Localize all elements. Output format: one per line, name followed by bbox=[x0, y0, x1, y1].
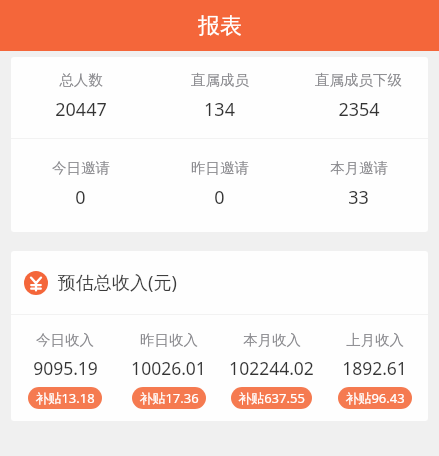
button[interactable]: 昨日收入 bbox=[117, 331, 220, 409]
other: Estimated income bbox=[24, 271, 48, 295]
staticText: 昨日收入 bbox=[140, 331, 198, 349]
button[interactable]: 今日收入 bbox=[13, 331, 117, 409]
staticText: 上月收入 bbox=[346, 331, 404, 349]
button[interactable]: 本月收入 bbox=[220, 331, 323, 409]
button[interactable]: Estimated income bbox=[11, 251, 428, 314]
staticText: 134 bbox=[204, 97, 235, 122]
staticText: 本月邀请 bbox=[330, 159, 388, 177]
staticText: 2354 bbox=[338, 97, 380, 122]
staticText: 直属成员下级 bbox=[315, 71, 402, 89]
staticText: 昨日邀请 bbox=[191, 159, 249, 177]
button[interactable]: 直属成员 bbox=[150, 71, 289, 122]
staticText: 本月收入 bbox=[243, 331, 301, 349]
staticText: 0 bbox=[75, 185, 86, 210]
staticText: 33 bbox=[348, 185, 369, 210]
staticText: 20447 bbox=[55, 97, 107, 122]
button[interactable]: 今日邀请 bbox=[11, 159, 150, 210]
staticText: 直属成员 bbox=[191, 71, 249, 89]
staticText: 今日收入 bbox=[36, 331, 94, 349]
staticText: 总人数 bbox=[59, 71, 103, 89]
button[interactable]: 总人数 bbox=[11, 71, 150, 122]
staticText: 预估总收入(元) bbox=[58, 270, 177, 295]
staticText: 今日邀请 bbox=[52, 159, 110, 177]
staticText: 补贴17.36 bbox=[139, 389, 199, 407]
staticText: 补贴637.55 bbox=[238, 389, 305, 407]
staticText: 1892.61 bbox=[342, 356, 407, 380]
staticText: 9095.19 bbox=[33, 356, 98, 380]
staticText: 10026.01 bbox=[131, 356, 206, 380]
staticText: 补贴13.18 bbox=[35, 389, 95, 407]
button[interactable]: 昨日邀请 bbox=[150, 159, 289, 210]
button[interactable]: 本月邀请 bbox=[289, 159, 428, 210]
button[interactable]: 直属成员下级 bbox=[289, 71, 428, 122]
staticText: 102244.02 bbox=[229, 356, 314, 380]
staticText: 报表 bbox=[198, 12, 242, 40]
staticText: 补贴96.43 bbox=[345, 389, 405, 407]
staticText: 0 bbox=[214, 185, 225, 210]
button[interactable]: 上月收入 bbox=[323, 331, 426, 409]
